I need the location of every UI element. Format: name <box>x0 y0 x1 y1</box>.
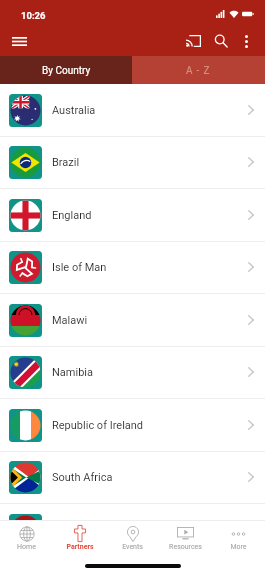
staticText: By Country <box>42 65 91 77</box>
button[interactable]: Cast <box>179 27 207 55</box>
staticText: A - Z <box>186 65 211 77</box>
staticText: 10:26 <box>21 10 46 21</box>
staticText: Events <box>122 543 143 551</box>
button[interactable]: By Country <box>0 56 132 84</box>
button[interactable]: Events <box>106 521 159 554</box>
staticText: Brazil <box>52 156 80 169</box>
button[interactable]: Australia <box>0 84 265 137</box>
staticText: Partners <box>66 543 94 551</box>
button[interactable]: Home <box>0 521 53 554</box>
staticText: Resources <box>169 543 202 551</box>
button[interactable]: A - Z <box>132 56 265 84</box>
staticText: More <box>230 543 247 551</box>
button[interactable]: Republic of Ireland <box>0 399 265 452</box>
button[interactable]: Isle of Man <box>0 241 265 294</box>
staticText: Isle of Man <box>52 261 107 274</box>
staticText: Home <box>17 543 36 551</box>
button[interactable]: Resources <box>159 521 212 554</box>
staticText: Australia <box>52 104 96 117</box>
staticText: England <box>52 209 92 222</box>
button[interactable]: South Africa <box>0 451 265 504</box>
staticText: Republic of Ireland <box>52 419 144 432</box>
button[interactable]: England <box>0 189 265 242</box>
button[interactable]: Spain <box>0 504 265 520</box>
button[interactable]: Menu <box>3 26 36 56</box>
button[interactable]: Search <box>207 27 235 55</box>
staticText: South Africa <box>52 471 113 484</box>
button[interactable]: Brazil <box>0 136 265 189</box>
button[interactable]: More <box>212 521 265 554</box>
button[interactable]: Malawi <box>0 294 265 347</box>
button[interactable]: Namibia <box>0 346 265 399</box>
button[interactable]: Partners <box>53 521 106 554</box>
staticText: Namibia <box>52 366 93 379</box>
button[interactable]: More options <box>235 26 257 56</box>
staticText: Malawi <box>52 314 88 327</box>
